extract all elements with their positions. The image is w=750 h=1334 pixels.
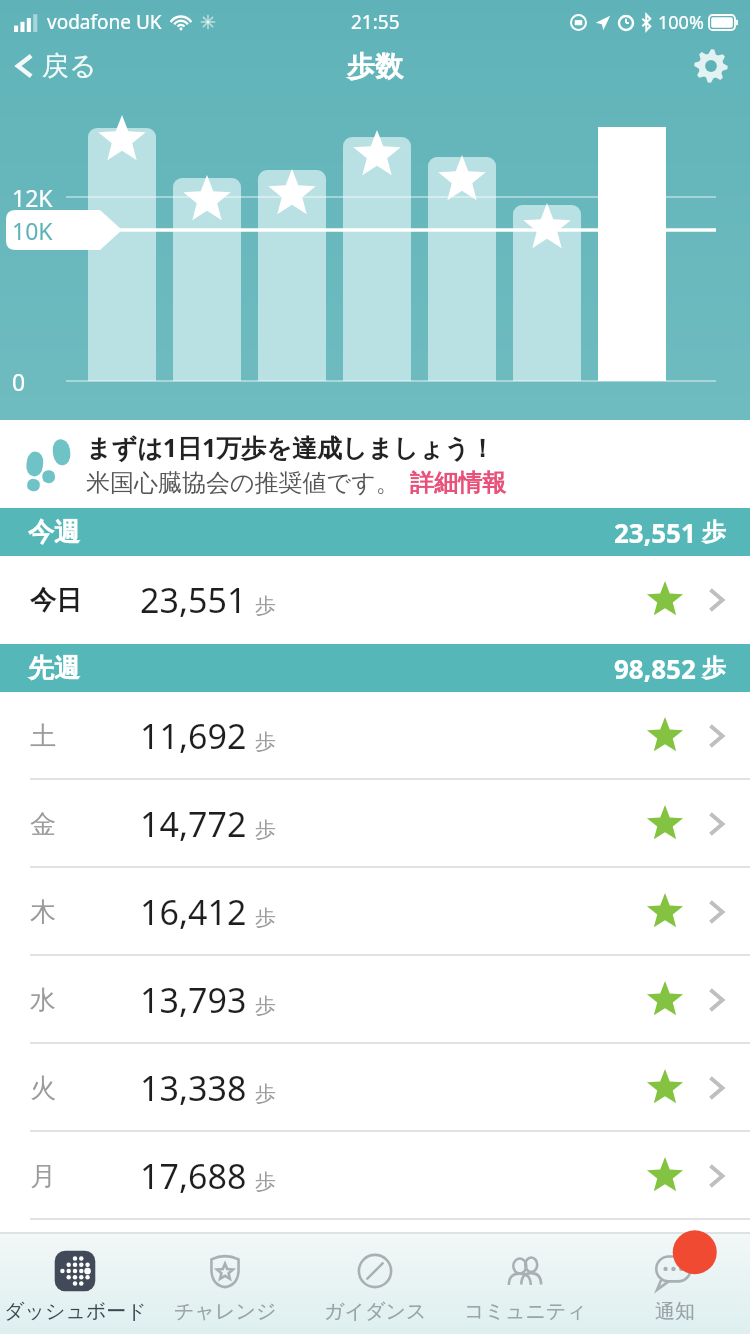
staticText: 詳細情報: [410, 468, 506, 498]
staticText: 歩: [702, 517, 726, 547]
staticText: 米国心臓協会の推奨値です。: [86, 468, 400, 498]
button[interactable]: 月: [0, 1132, 750, 1220]
button[interactable]: コミュニティ: [450, 1234, 600, 1334]
staticText: 98,852: [614, 651, 696, 686]
staticText: まずは1日1万歩を達成しましょう！: [86, 430, 495, 464]
button[interactable]: 今日: [0, 556, 750, 644]
staticText: 歩: [255, 729, 276, 755]
staticText: 11,692: [140, 713, 247, 759]
staticText: チャレンジ: [174, 1299, 277, 1324]
button[interactable]: ガイダンス: [300, 1234, 450, 1334]
staticText: 木: [30, 896, 56, 929]
staticText: 先週: [28, 652, 80, 685]
staticText: 23,551: [614, 515, 696, 550]
staticText: 歩: [702, 653, 726, 683]
button[interactable]: チャレンジ: [150, 1234, 300, 1334]
staticText: 水: [30, 984, 56, 1017]
staticText: 火: [30, 1072, 56, 1105]
staticText: 歩: [255, 593, 276, 619]
button[interactable]: 戻る: [0, 45, 107, 87]
staticText: 12K: [12, 182, 53, 213]
staticText: 13,338: [140, 1065, 247, 1111]
button[interactable]: 水: [0, 956, 750, 1044]
staticText: 金: [30, 808, 56, 841]
button[interactable]: ダッシュボード: [0, 1234, 150, 1334]
staticText: 歩: [255, 905, 276, 931]
button[interactable]: 通知: [600, 1234, 750, 1334]
staticText: 21:55: [351, 9, 400, 35]
staticText: 歩数: [347, 49, 403, 84]
staticText: 歩: [255, 993, 276, 1019]
button[interactable]: 火: [0, 1044, 750, 1132]
staticText: 0: [12, 366, 26, 397]
staticText: ダッシュボード: [4, 1299, 147, 1324]
staticText: 16,412: [140, 889, 247, 935]
staticText: 100%: [658, 10, 704, 35]
staticText: 戻る: [42, 49, 97, 83]
button[interactable]: 土: [0, 692, 750, 780]
staticText: 14,772: [140, 801, 247, 847]
staticText: 今週: [28, 516, 80, 549]
staticText: 歩: [255, 1169, 276, 1195]
staticText: 今日: [30, 584, 82, 617]
button[interactable]: 金: [0, 780, 750, 868]
staticText: 歩: [255, 817, 276, 843]
staticText: 月: [30, 1160, 56, 1193]
staticText: ガイダンス: [324, 1299, 427, 1324]
staticText: 17,688: [140, 1153, 247, 1199]
button[interactable]: Settings: [692, 47, 750, 85]
staticText: 13,793: [140, 977, 247, 1023]
staticText: 通知: [655, 1299, 695, 1324]
staticText: コミュニティ: [464, 1299, 587, 1324]
button[interactable]: 木: [0, 868, 750, 956]
staticText: vodafone UK: [47, 9, 162, 35]
staticText: 10K: [12, 215, 53, 246]
staticText: 歩: [255, 1081, 276, 1107]
button[interactable]: まずは1日1万歩を達成しましょう！: [0, 420, 750, 508]
staticText: 23,551: [140, 577, 247, 623]
staticText: 土: [30, 720, 56, 753]
